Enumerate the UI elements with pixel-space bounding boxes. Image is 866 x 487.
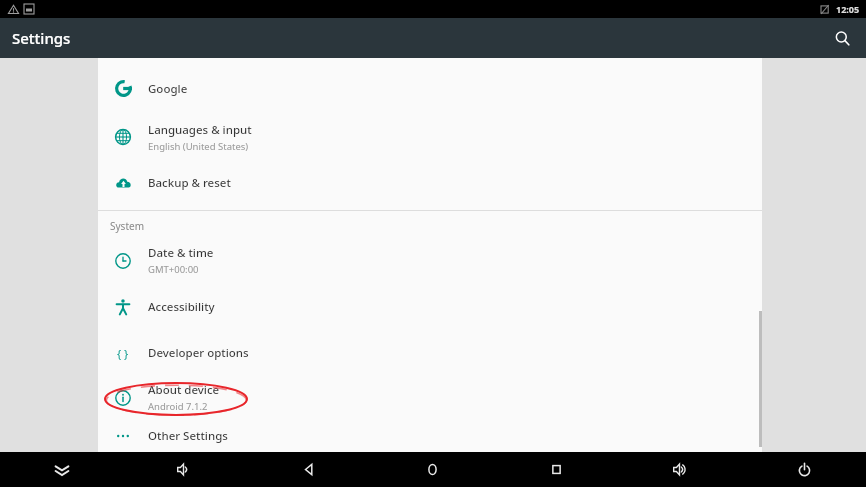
button[interactable]: Home [370, 452, 494, 487]
staticText: English (United States) [148, 140, 249, 153]
button[interactable]: Accessibility [98, 283, 762, 330]
button[interactable]: Search [828, 24, 856, 52]
button[interactable]: Volume down [123, 452, 246, 487]
staticText: { } [117, 346, 129, 361]
button[interactable]: Other Settings [98, 420, 762, 452]
staticText: Date & time [148, 245, 214, 261]
button[interactable]: Backup & reset [98, 160, 762, 206]
button[interactable]: Date & time [98, 238, 762, 283]
staticText: Settings [12, 28, 71, 48]
staticText: GMT+00:00 [148, 263, 199, 276]
button[interactable]: Recents [494, 452, 618, 487]
staticText: Languages & input [148, 122, 252, 138]
staticText: Accessibility [148, 299, 215, 315]
button[interactable]: Hide [0, 452, 123, 487]
button[interactable]: About device [98, 375, 762, 420]
staticText: System [110, 219, 144, 233]
button[interactable]: { } [98, 330, 762, 375]
button[interactable]: Google [98, 63, 762, 114]
button[interactable]: Power [742, 452, 866, 487]
button[interactable]: Back [246, 452, 370, 487]
staticText: Developer options [148, 345, 249, 361]
staticText: Other Settings [148, 428, 228, 444]
staticText: Google [148, 81, 188, 97]
staticText: About device [148, 382, 220, 398]
staticText: Backup & reset [148, 175, 231, 191]
staticText: 12:05 [836, 3, 860, 15]
button[interactable]: Languages & input [98, 114, 762, 160]
button[interactable]: Volume up [618, 452, 742, 487]
staticText: Android 7.1.2 [148, 400, 208, 413]
